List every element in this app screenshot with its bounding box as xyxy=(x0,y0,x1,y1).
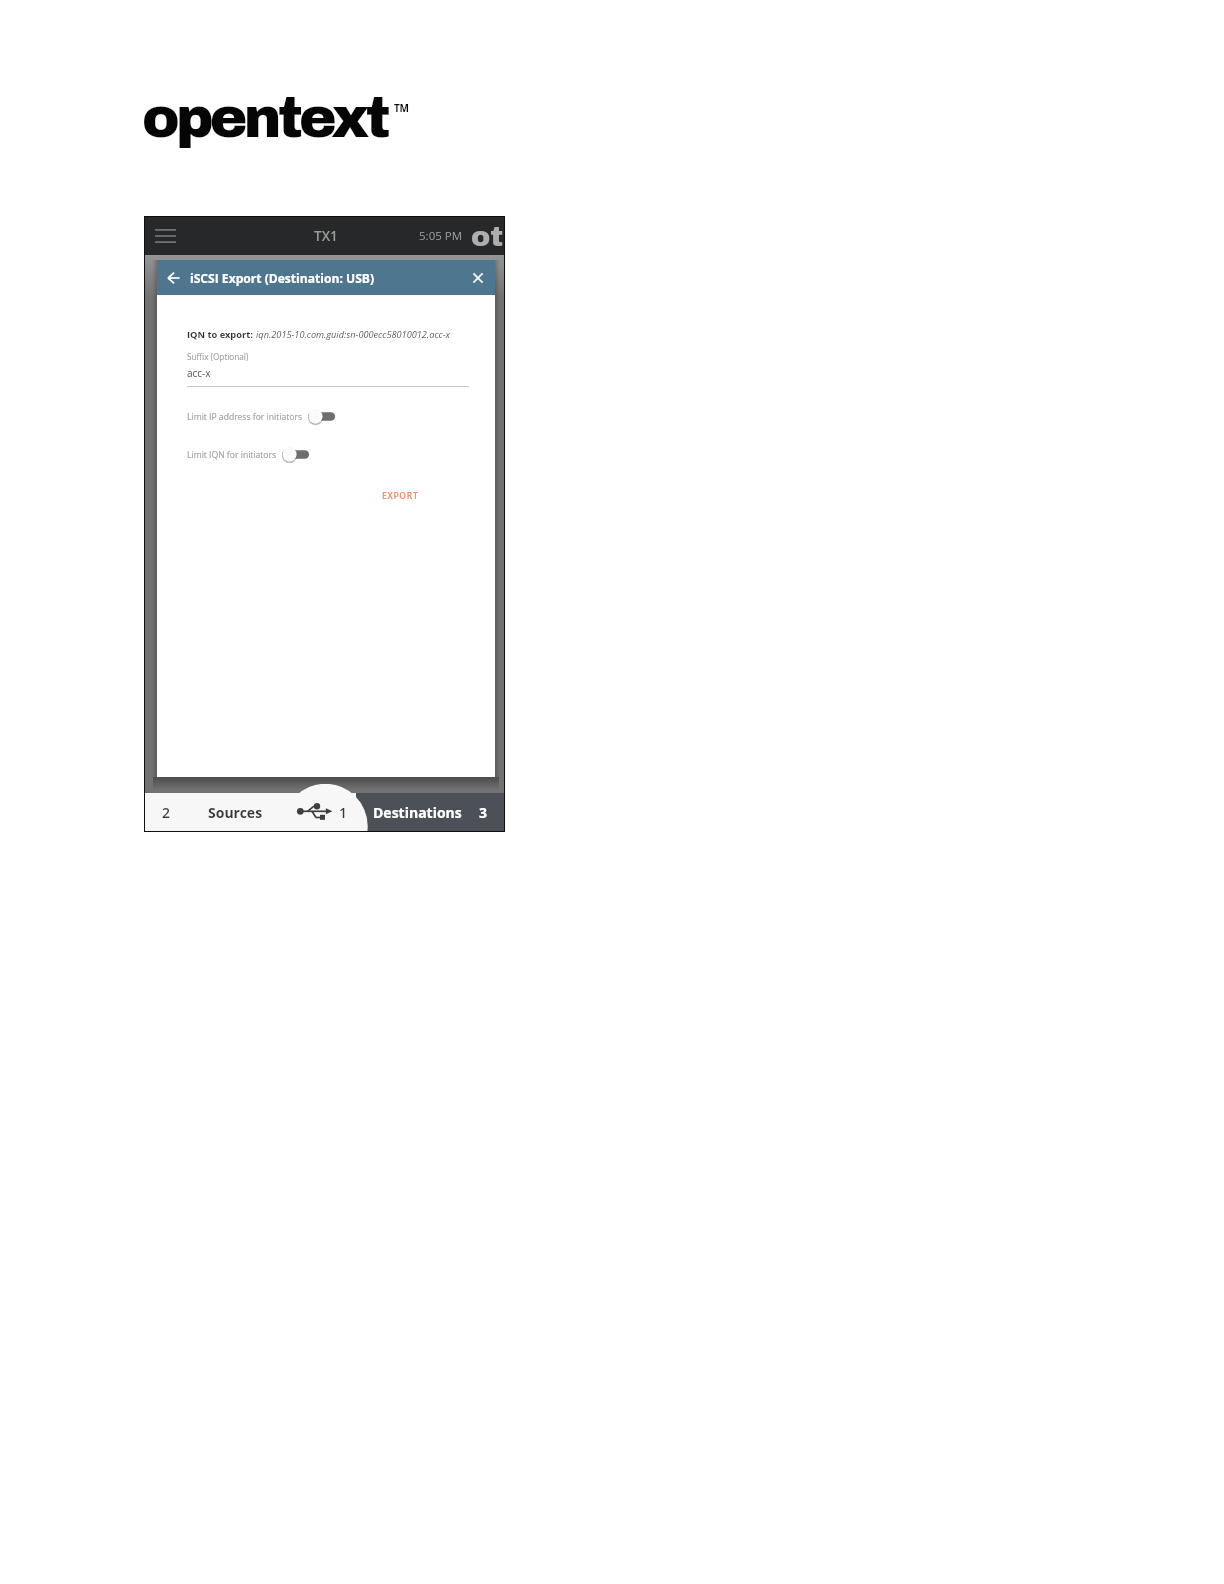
staticText: iSCSI Export (Destination: USB) xyxy=(190,270,375,286)
staticText: ot xyxy=(471,221,503,252)
button[interactable]: Menu xyxy=(155,229,176,243)
staticText: Destinations xyxy=(373,803,462,822)
button[interactable] xyxy=(145,793,283,831)
staticText: opentext xyxy=(142,87,387,148)
staticText: 2 xyxy=(162,803,170,822)
staticText: 5:05 PM xyxy=(419,228,463,244)
button[interactable] xyxy=(368,793,504,831)
staticText: Limit IP address for initiators xyxy=(187,411,303,423)
staticText: EXPORT xyxy=(382,490,419,502)
staticText: IQN to export: xyxy=(187,328,256,341)
button[interactable]: USB transfer xyxy=(283,793,368,831)
button[interactable]: Limit IP address for initiators xyxy=(308,408,336,425)
staticText: iqn.2015-10.com.guid:sn-000ecc58010012.a… xyxy=(256,328,450,341)
staticText: 3 xyxy=(479,803,487,822)
button[interactable]: Limit IQN for initiators xyxy=(282,446,310,463)
staticText: Sources xyxy=(208,803,263,822)
staticText: TM xyxy=(394,101,409,115)
staticText: Limit IQN for initiators xyxy=(187,449,277,461)
button[interactable]: Close xyxy=(470,270,486,286)
staticText: TX1 xyxy=(314,227,338,245)
staticText: 1 xyxy=(339,803,347,822)
button[interactable]: Back xyxy=(165,270,181,286)
button[interactable]: EXPORT xyxy=(382,490,419,502)
staticText: Suffix (Optional) xyxy=(187,351,249,362)
staticText: acc-x xyxy=(187,366,211,380)
